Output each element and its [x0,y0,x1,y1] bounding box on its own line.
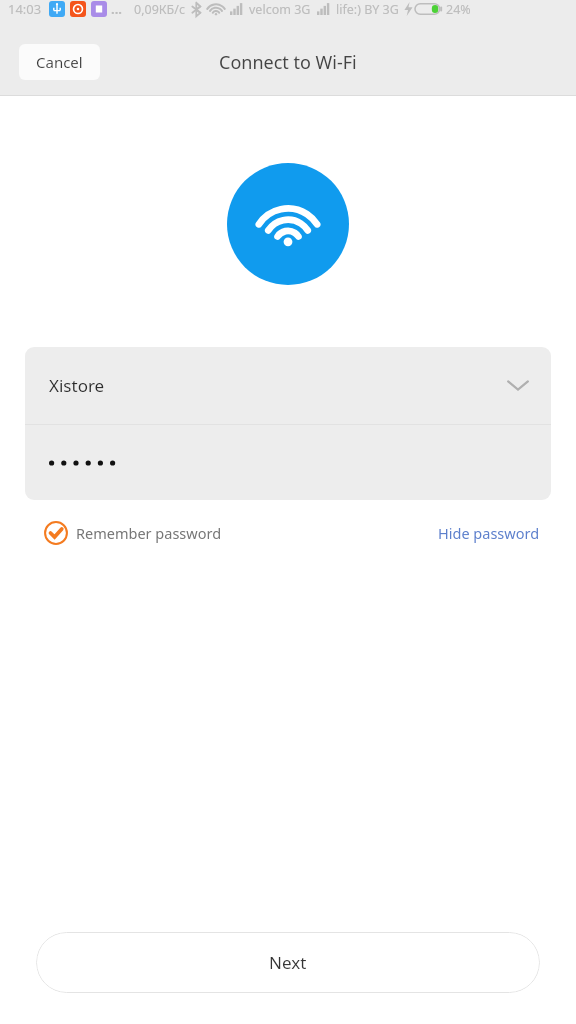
staticText: Cancel [36,52,83,72]
staticText: Hide password [438,523,540,543]
staticText: Connect to Wi-Fi [219,50,357,75]
staticText: Xistore [49,374,105,397]
button[interactable]: Hide password [436,517,542,549]
staticText: Remember password [76,523,222,543]
button[interactable]: Remember password [44,515,222,551]
button[interactable]: Cancel [19,44,100,80]
staticText: life:) BY 3G [336,1,399,18]
staticText: velcom 3G [249,1,311,18]
button[interactable]: Xistore [25,347,551,424]
staticText: 24% [446,1,471,18]
staticText: ... [111,0,122,18]
other: Choose network [507,379,529,392]
staticText: 14:03 [8,0,42,18]
button[interactable] [25,425,551,500]
staticText: Next [269,951,307,974]
button[interactable]: Next [36,932,540,993]
staticText: 0,09КБ/c [134,1,185,18]
